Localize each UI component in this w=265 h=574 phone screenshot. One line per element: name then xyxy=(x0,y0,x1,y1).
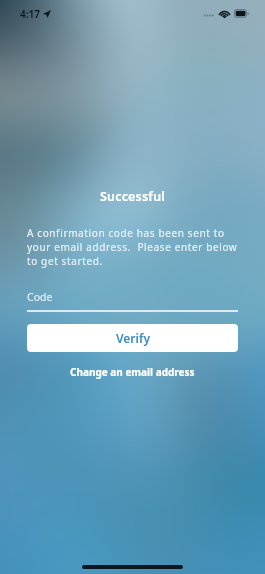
staticText: Change an email address xyxy=(70,365,195,379)
staticText: to get started. xyxy=(27,254,103,268)
staticText: 4:17 xyxy=(20,7,40,21)
staticText: Successful xyxy=(0,188,265,205)
staticText: your email address. Please enter below xyxy=(27,240,238,254)
staticText: Code xyxy=(27,290,53,304)
button[interactable]: Verify xyxy=(27,324,238,352)
staticText: Verify xyxy=(116,330,150,346)
staticText: A confirmation code has been sent to xyxy=(27,226,225,240)
button[interactable]: Change an email address xyxy=(27,365,238,379)
